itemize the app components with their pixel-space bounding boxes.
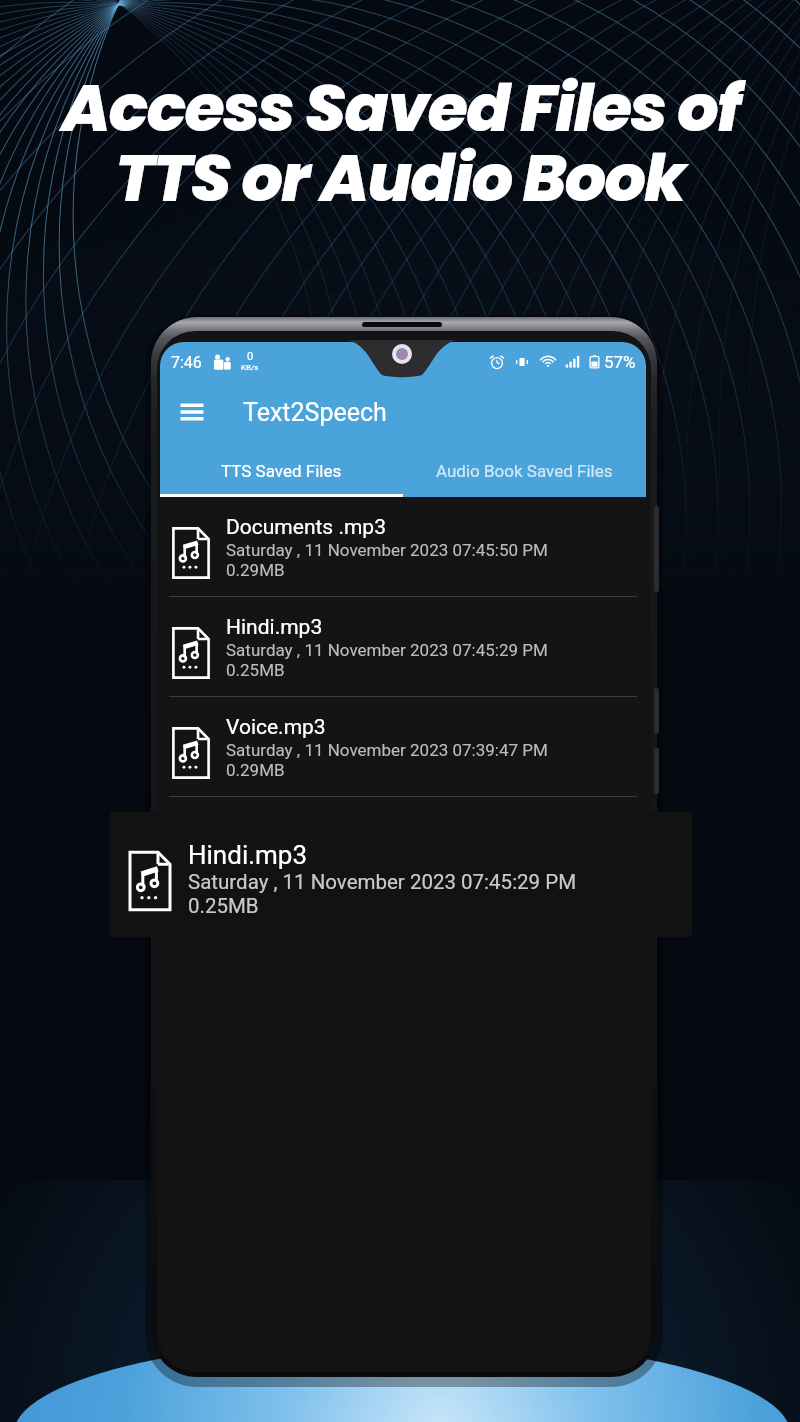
button[interactable]: Hindi.mp3 (110, 812, 692, 937)
staticText: Saturday , 11 November 2023 07:45:29 PM (188, 870, 577, 894)
staticText: Saturday , 11 November 2023 07:39:47 PM (226, 740, 548, 760)
staticText: 57% (604, 352, 636, 372)
staticText: 0.29MB (226, 760, 285, 780)
staticText: 0.25MB (226, 660, 285, 680)
staticText: 0.29MB (226, 560, 285, 580)
button[interactable]: Hindi.mp3 (160, 597, 646, 696)
staticText: 7:46 (171, 353, 202, 372)
staticText: Access Saved Files of (61, 63, 740, 154)
staticText: Saturday , 11 November 2023 07:45:50 PM (226, 540, 548, 560)
staticText: Voice.mp3 (226, 715, 326, 740)
button[interactable]: TTS Saved Files (160, 442, 403, 494)
staticText: KB/s (241, 363, 259, 372)
staticText: Saturday , 11 November 2023 07:45:29 PM (226, 640, 548, 660)
button[interactable]: Documents .mp3 (160, 497, 646, 596)
button[interactable]: Audio Book Saved Files (403, 442, 646, 494)
staticText: Documents .mp3 (226, 515, 386, 540)
staticText: Text2Speech (243, 398, 387, 427)
staticText: TTS Saved Files (221, 461, 342, 481)
staticText: Hindi.mp3 (188, 840, 308, 870)
staticText: Hindi.mp3 (226, 615, 323, 640)
button[interactable]: Voice.mp3 (160, 697, 646, 796)
staticText: 0 (247, 350, 254, 363)
button[interactable]: Open navigation menu (174, 394, 210, 430)
staticText: 0.25MB (188, 894, 259, 918)
staticText: Audio Book Saved Files (436, 461, 613, 481)
staticText: TTS or Audio Book (115, 133, 685, 224)
